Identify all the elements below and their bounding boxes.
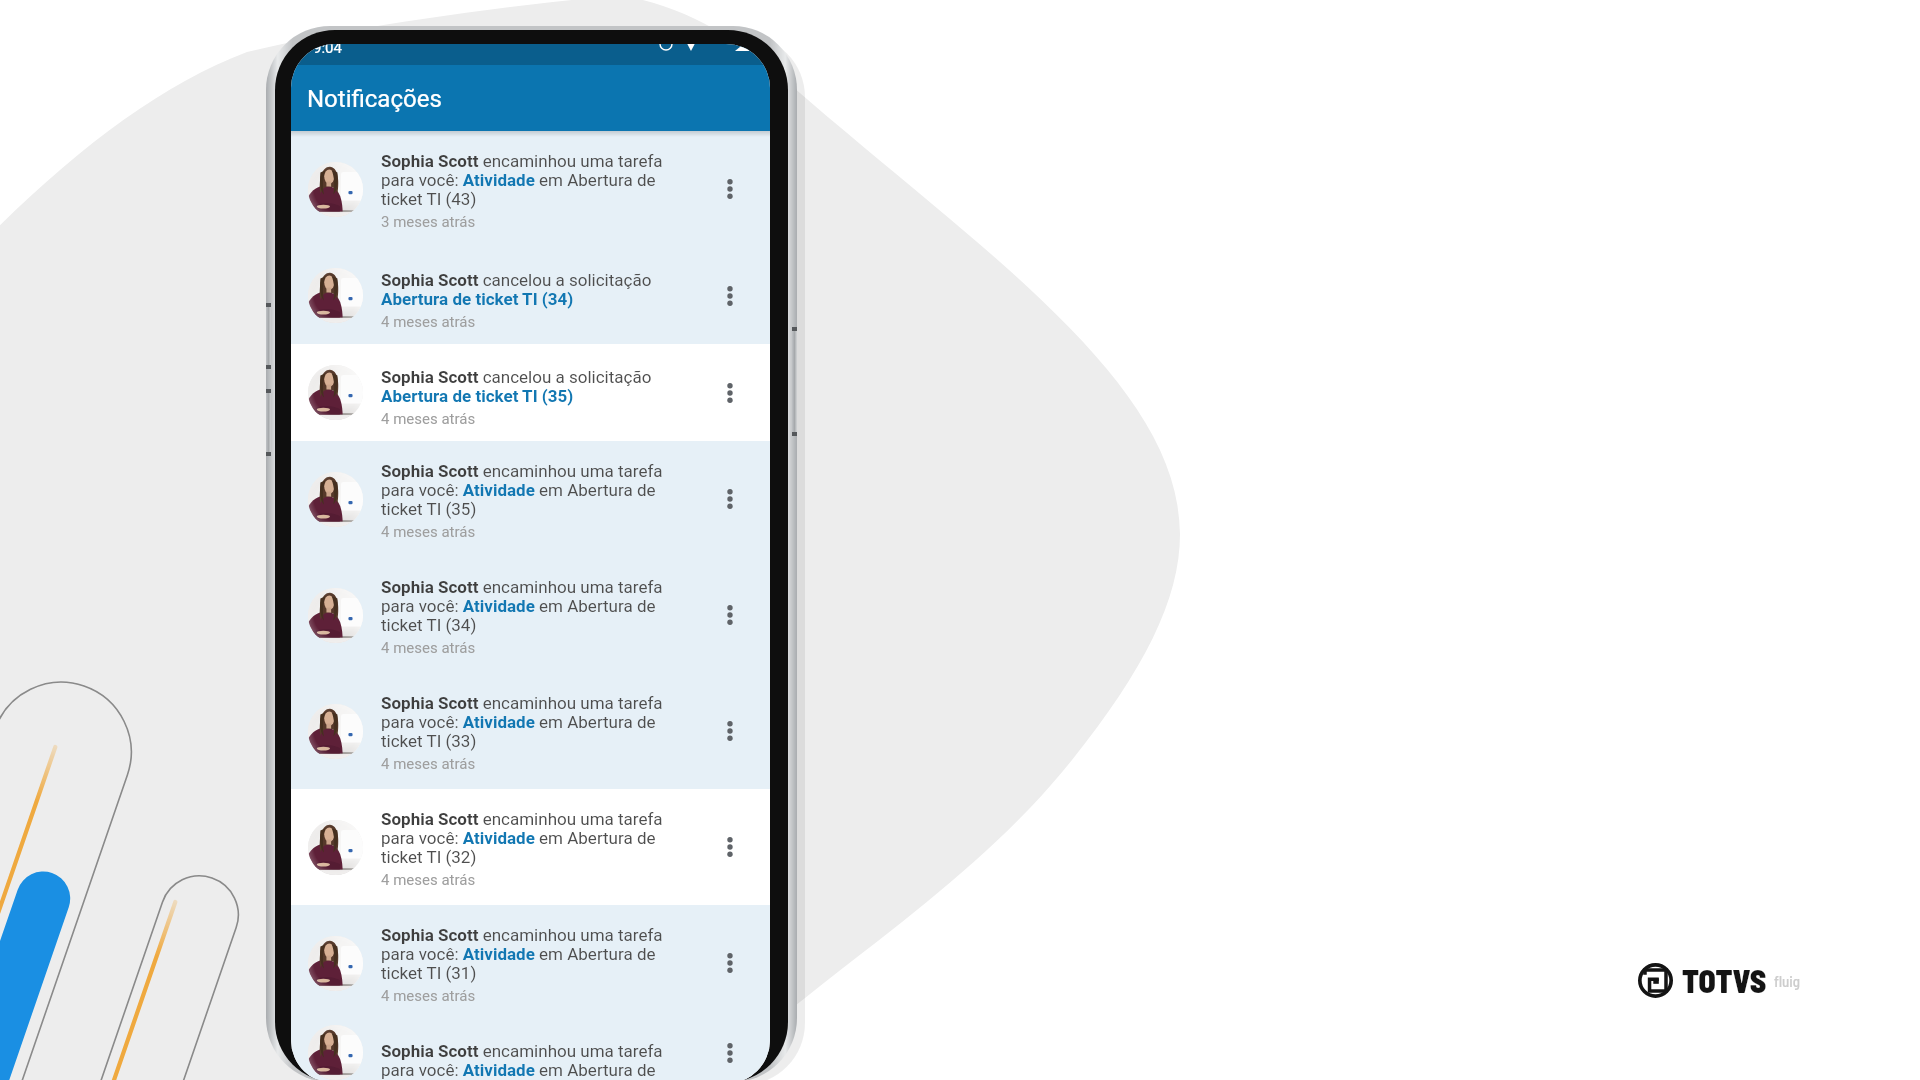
staticText: Sophia Scott encaminhou uma tarefa para … — [381, 925, 671, 983]
button[interactable]: Sophia Scott encaminhou uma tarefa para … — [291, 789, 770, 905]
button[interactable]: Sophia Scott encaminhou uma tarefa para … — [291, 1021, 770, 1080]
staticText: Sophia Scott cancelou a solicitação Aber… — [381, 367, 652, 406]
staticText: Sophia Scott encaminhou uma tarefa para … — [381, 693, 671, 751]
staticText: Sophia Scott encaminhou uma tarefa para … — [381, 809, 671, 867]
button[interactable]: Sophia Scott cancelou a solicitação Aber… — [291, 344, 770, 441]
button[interactable]: Mais opções — [708, 365, 752, 421]
staticText: Sophia Scott encaminhou uma tarefa para … — [381, 1041, 671, 1080]
staticText: 4 meses atrás — [381, 987, 476, 1005]
staticText: 4 meses atrás — [381, 755, 476, 773]
button[interactable]: Sophia Scott encaminhou uma tarefa para … — [291, 673, 770, 789]
button[interactable]: Mais opções — [708, 819, 752, 875]
staticText: Notificações — [307, 85, 442, 113]
staticText: 9:04 — [313, 44, 342, 57]
staticText: fluig — [1774, 972, 1801, 990]
staticText: Sophia Scott encaminhou uma tarefa para … — [381, 577, 671, 635]
staticText: 4 meses atrás — [381, 871, 476, 889]
button[interactable]: Sophia Scott encaminhou uma tarefa para … — [291, 131, 770, 247]
staticText: TOTVS — [1682, 962, 1767, 999]
button[interactable]: Sophia Scott encaminhou uma tarefa para … — [291, 557, 770, 673]
staticText: 4 meses atrás — [381, 410, 476, 428]
staticText: Sophia Scott encaminhou uma tarefa para … — [381, 151, 671, 209]
button[interactable]: Mais opções — [708, 703, 752, 759]
button[interactable]: Mais opções — [708, 471, 752, 527]
button[interactable]: Mais opções — [708, 1025, 752, 1080]
staticText: 4 meses atrás — [381, 523, 476, 541]
staticText: 3 meses atrás — [381, 213, 476, 231]
button[interactable]: Sophia Scott cancelou a solicitação Aber… — [291, 247, 770, 344]
button[interactable]: Mais opções — [708, 935, 752, 991]
staticText: Sophia Scott cancelou a solicitação Aber… — [381, 270, 652, 309]
button[interactable]: Mais opções — [708, 268, 752, 324]
button[interactable]: TOTVS Fluig — [1638, 962, 1801, 999]
button[interactable]: Sophia Scott encaminhou uma tarefa para … — [291, 441, 770, 557]
staticText: 4 meses atrás — [381, 313, 476, 331]
button[interactable]: Sophia Scott encaminhou uma tarefa para … — [291, 905, 770, 1021]
staticText: Sophia Scott encaminhou uma tarefa para … — [381, 461, 671, 519]
staticText: 4 meses atrás — [381, 639, 476, 657]
button[interactable]: Mais opções — [708, 161, 752, 217]
button[interactable]: Mais opções — [708, 587, 752, 643]
